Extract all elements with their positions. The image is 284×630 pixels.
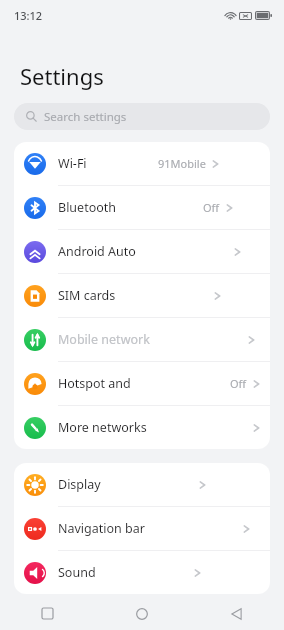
button[interactable]: Mobile network bbox=[14, 318, 270, 361]
staticText: Navigation bar bbox=[58, 520, 145, 537]
staticText: Hotspot and tethering bbox=[58, 375, 144, 392]
button[interactable]: More networks and connections bbox=[14, 406, 270, 449]
staticText: Settings bbox=[20, 61, 104, 91]
button[interactable]: Bluetooth bbox=[14, 186, 270, 229]
staticText: 13:12 bbox=[14, 8, 43, 23]
staticText: Sound bbox=[58, 564, 96, 581]
staticText: SIM cards bbox=[58, 287, 116, 304]
staticText: Mobile network bbox=[58, 331, 150, 348]
button[interactable]: Navigation bar bbox=[14, 507, 270, 550]
staticText: Off bbox=[230, 376, 247, 391]
button[interactable]: Home bbox=[94, 597, 189, 630]
button[interactable]: Hotspot and tethering bbox=[14, 362, 270, 405]
button[interactable]: Android Auto bbox=[14, 230, 270, 273]
button[interactable]: Recents bbox=[0, 597, 94, 630]
button[interactable]: SIM cards bbox=[14, 274, 270, 317]
staticText: Wi-Fi bbox=[58, 155, 87, 172]
button[interactable]: Display bbox=[14, 463, 270, 506]
staticText: Android Auto bbox=[58, 243, 136, 260]
staticText: 91Mobile bbox=[158, 156, 206, 171]
button[interactable]: Search settings bbox=[14, 103, 270, 130]
staticText: Display bbox=[58, 476, 101, 493]
button[interactable]: Back bbox=[189, 597, 284, 630]
staticText: Search settings bbox=[44, 109, 127, 125]
staticText: Bluetooth bbox=[58, 199, 117, 216]
button[interactable]: Wi-Fi bbox=[14, 142, 270, 185]
button[interactable]: Sound bbox=[14, 551, 270, 594]
staticText: More networks and connections bbox=[58, 419, 155, 436]
staticText: Off bbox=[203, 200, 220, 215]
